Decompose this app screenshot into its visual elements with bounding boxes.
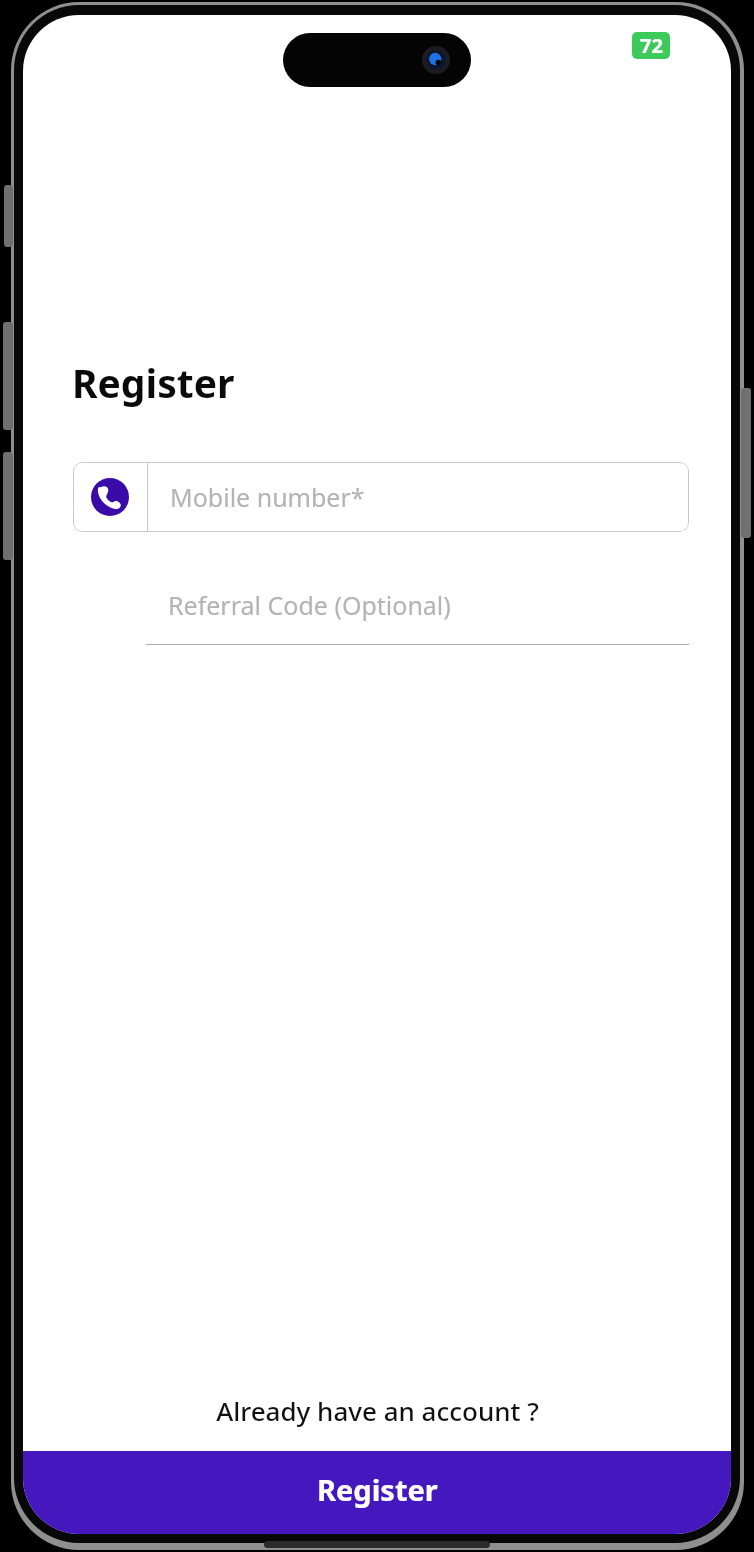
button[interactable]: Phone xyxy=(73,462,689,532)
button[interactable]: Referral Code (Optional) xyxy=(146,575,689,645)
staticText: Referral Code (Optional) xyxy=(168,588,451,622)
button[interactable]: Register xyxy=(23,1451,731,1534)
other: Phone xyxy=(73,462,147,532)
staticText: 72 xyxy=(640,32,663,59)
staticText: Mobile number* xyxy=(170,480,365,514)
staticText: Already have an account ? xyxy=(216,1393,539,1428)
staticText: Register xyxy=(72,356,235,409)
button[interactable]: Already have an account ? xyxy=(23,1385,731,1435)
staticText: Register xyxy=(317,1470,438,1509)
